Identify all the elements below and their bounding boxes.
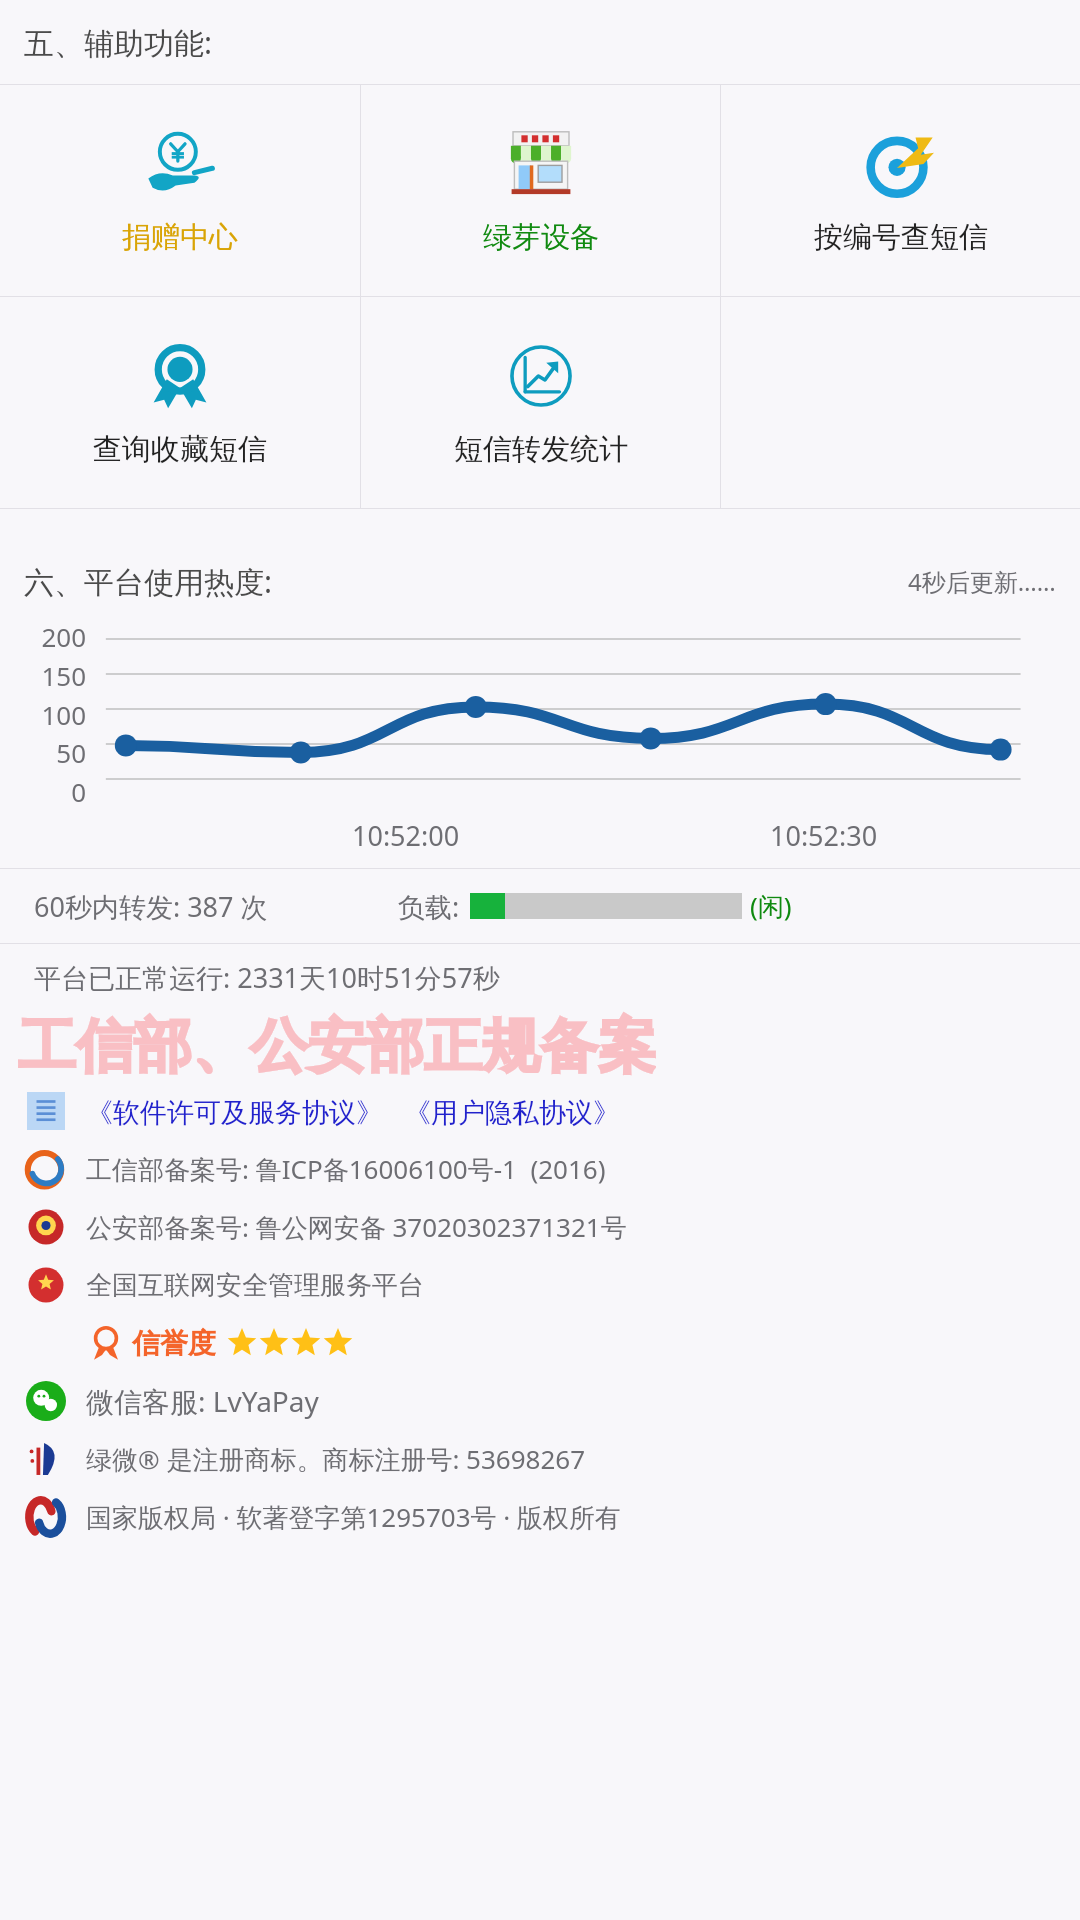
button[interactable]: 全国互联网安全管理服务平台	[22, 1256, 1080, 1314]
button[interactable]: 工信部备案号: 鲁ICP备16006100号-1 (2016)	[22, 1140, 1080, 1198]
button[interactable]: 国家版权局 · 软著登字第1295703号 · 版权所有	[22, 1488, 1080, 1546]
staticText: 《软件许可及服务协议》 《用户隐私协议》	[86, 1093, 621, 1130]
staticText: (闲)	[750, 888, 792, 924]
other: 查询收藏短信	[147, 343, 213, 409]
staticText: 150	[41, 658, 86, 693]
button[interactable]: 《软件许可及服务协议》 《用户隐私协议》	[22, 1082, 1080, 1140]
staticText: 负载:	[398, 888, 460, 925]
other: 按编号查短信	[868, 131, 934, 197]
staticText: 60秒内转发: 387 次	[34, 888, 268, 925]
other: 短信转发统计	[508, 343, 574, 409]
staticText: 国家版权局 · 软著登字第1295703号 · 版权所有	[86, 1499, 622, 1535]
staticText: 微信客服: LvYaPay	[86, 1382, 319, 1420]
staticText: 绿芽设备	[483, 219, 599, 256]
staticText: 工信部、公安部正规备案	[18, 1010, 656, 1082]
staticText: 工信部备案号: 鲁ICP备16006100号-1 (2016)	[86, 1151, 606, 1187]
staticText: 捐赠中心	[122, 219, 238, 256]
staticText: 10:52:30	[770, 817, 878, 854]
other: 捐赠中心	[144, 128, 216, 200]
staticText: 50	[56, 735, 86, 770]
staticText: 200	[41, 619, 86, 654]
button[interactable]: 短信转发统计	[361, 297, 720, 508]
button[interactable]: 绿芽设备	[361, 85, 720, 296]
staticText: 绿微® 是注册商标。商标注册号: 53698267	[86, 1441, 586, 1477]
staticText: 按编号查短信	[814, 219, 988, 256]
staticText: 100	[41, 697, 86, 732]
button[interactable]: 查询收藏短信	[0, 297, 360, 508]
staticText: 五、辅助功能:	[24, 22, 213, 63]
staticText: 平台已正常运行: 2331天10时51分57秒	[34, 959, 500, 996]
staticText: 信誉度	[132, 1326, 216, 1361]
staticText: 4秒后更新……	[908, 565, 1056, 598]
staticText: 六、平台使用热度:	[24, 561, 273, 602]
button[interactable]: 按编号查短信	[721, 85, 1080, 296]
other: 绿芽设备	[506, 129, 576, 199]
button[interactable]: 公安部备案号: 鲁公网安备 37020302371321号	[22, 1198, 1080, 1256]
button[interactable]: 微信客服: LvYaPay	[22, 1372, 1080, 1430]
button[interactable]: 捐赠中心	[0, 85, 360, 296]
staticText: 0	[71, 774, 86, 809]
staticText: 10:52:00	[352, 817, 460, 854]
button[interactable]: 绿微® 是注册商标。商标注册号: 53698267	[22, 1430, 1080, 1488]
staticText: 查询收藏短信	[93, 431, 267, 468]
staticText: 短信转发统计	[454, 431, 628, 468]
button[interactable]: 信誉度	[86, 1314, 1080, 1372]
staticText: 公安部备案号: 鲁公网安备 37020302371321号	[86, 1209, 627, 1245]
staticText: 全国互联网安全管理服务平台	[86, 1269, 424, 1302]
